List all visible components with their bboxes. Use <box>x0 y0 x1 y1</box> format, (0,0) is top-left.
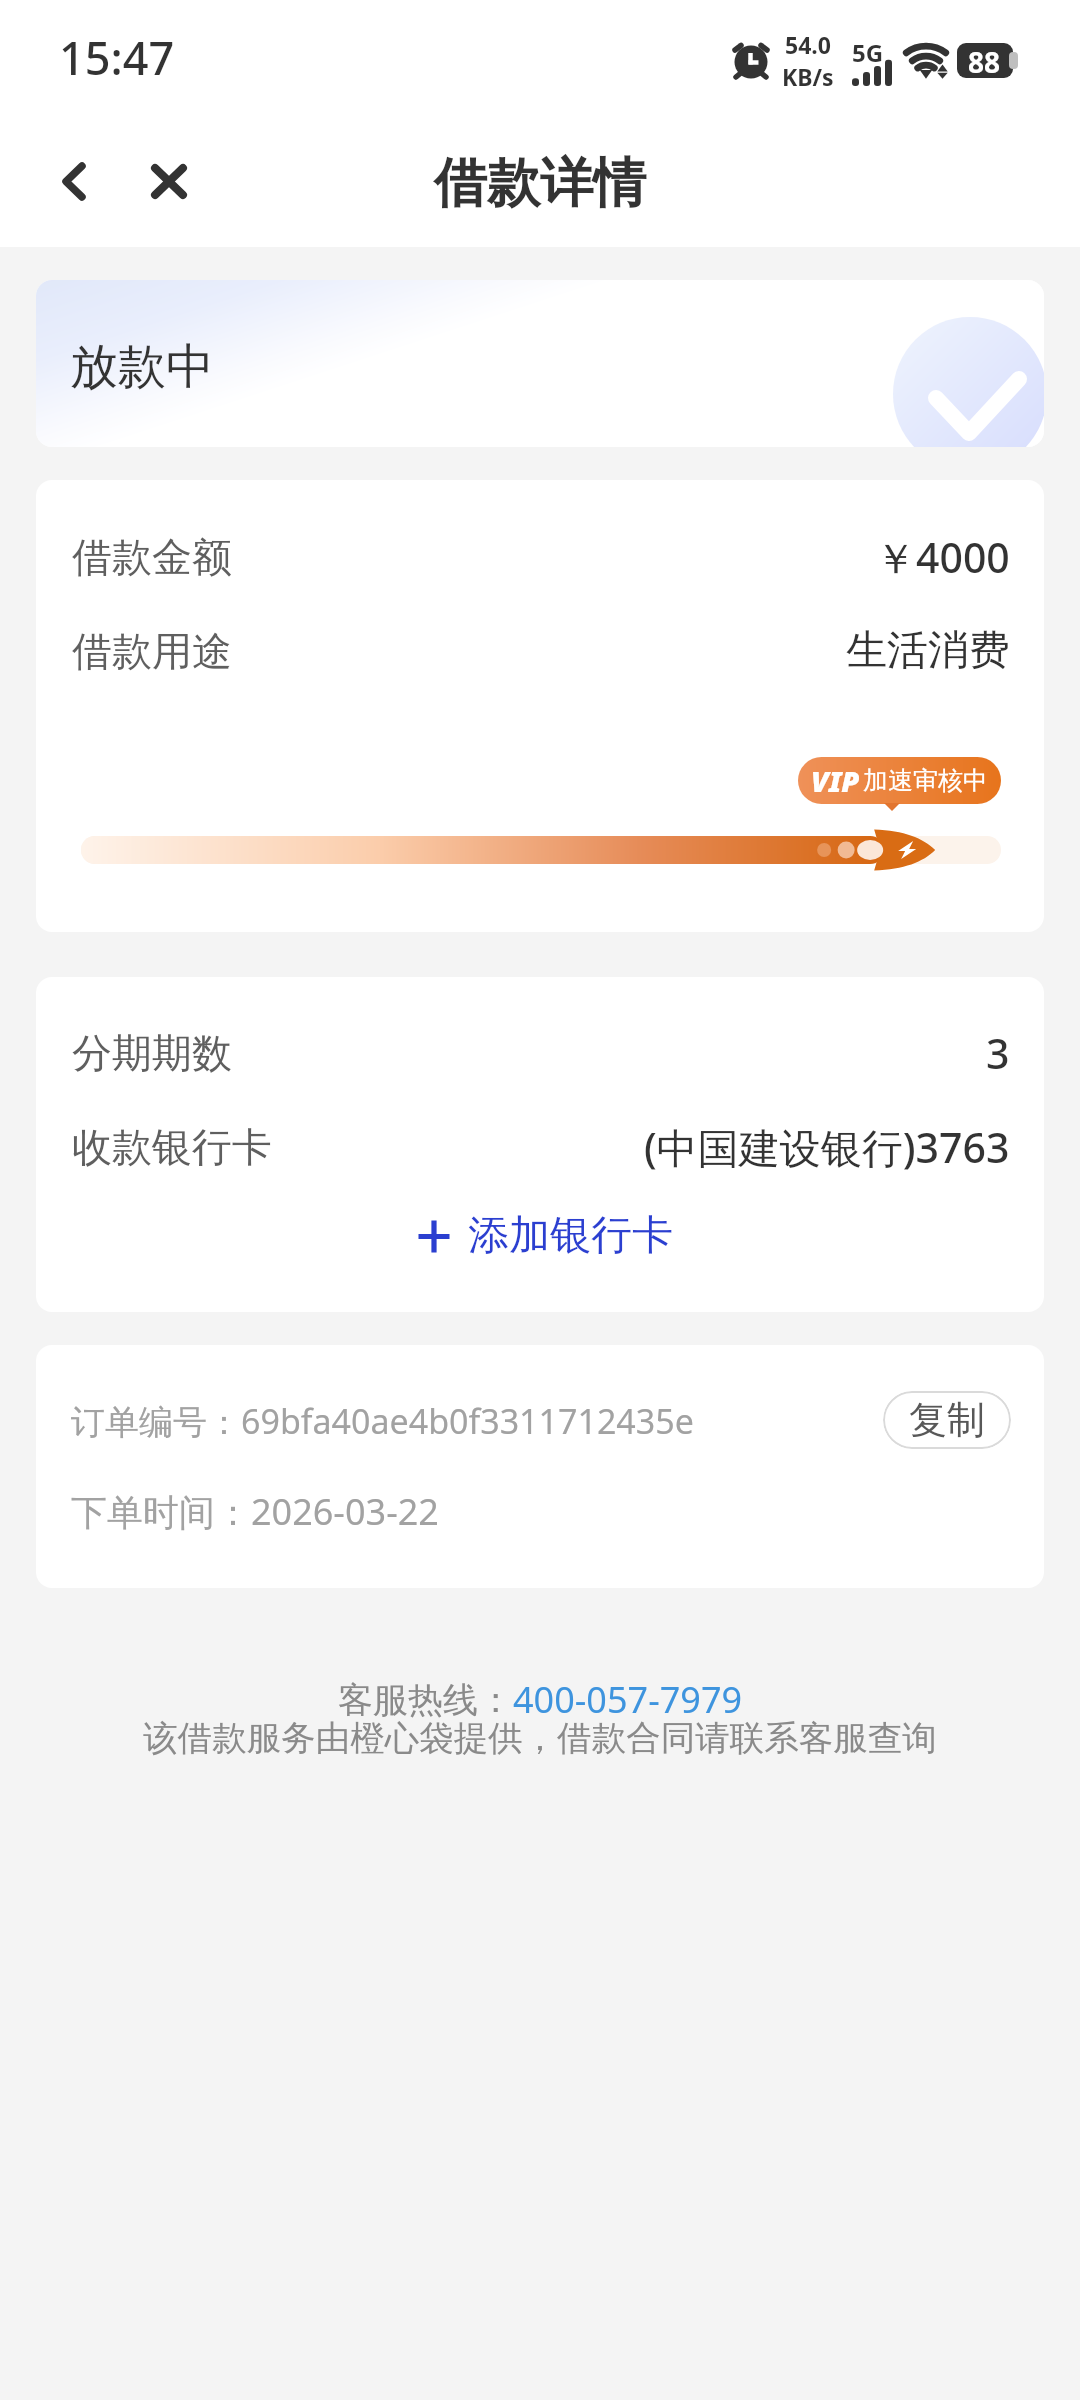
staticText: 借款用途 <box>72 626 232 676</box>
staticText: 下单时间：2026-03-22 <box>71 1487 439 1535</box>
staticText: 收款银行卡 <box>72 1122 272 1172</box>
staticText: 客服热线： <box>338 1678 513 1722</box>
staticText: 生活消费 <box>846 625 1010 677</box>
staticText: KB/s <box>782 61 834 92</box>
staticText: 借款详情 <box>434 150 646 217</box>
staticText: 3 <box>986 1025 1010 1081</box>
button[interactable]: 复制 <box>883 1391 1011 1449</box>
staticText: 54.0 <box>785 29 831 60</box>
staticText: VIP <box>811 761 860 800</box>
staticText: ￥4000 <box>875 529 1010 585</box>
staticText: 该借款服务由橙心袋提供，借款合同请联系客服查询 <box>143 1717 937 1760</box>
button[interactable]: 400-057-7979 <box>513 1675 743 1724</box>
staticText: 5G <box>852 36 884 69</box>
button[interactable]: 添加银行卡 <box>72 1201 1010 1271</box>
staticText: 分期期数 <box>72 1028 232 1078</box>
staticText: 88 <box>968 43 1001 78</box>
staticText: 复制 <box>909 1396 985 1444</box>
button[interactable]: Close <box>135 150 203 218</box>
staticText: 订单编号：69bfa40ae4b0f3311712435e <box>71 1398 694 1444</box>
staticText: 15:47 <box>59 27 175 88</box>
staticText: 添加银行卡 <box>468 1210 673 1262</box>
button[interactable]: Back <box>40 150 108 218</box>
staticText: 借款金额 <box>72 532 232 582</box>
staticText: (中国建设银行)3763 <box>644 1119 1010 1175</box>
staticText: 放款中 <box>70 337 214 397</box>
staticText: 加速审核中 <box>863 765 988 796</box>
